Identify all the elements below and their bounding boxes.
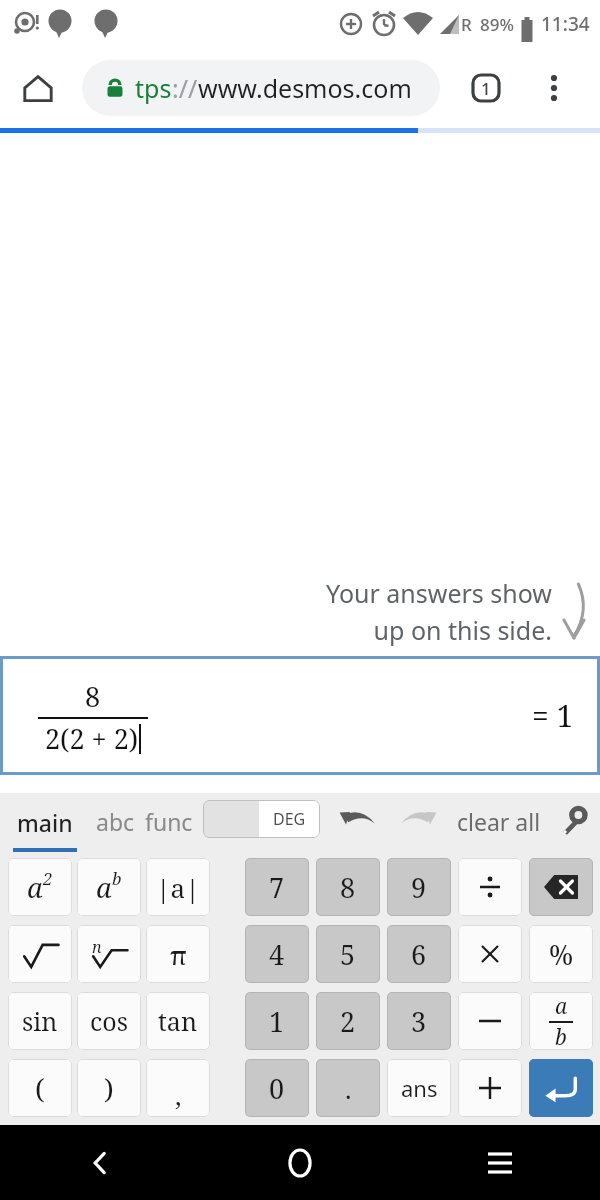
button[interactable]: Settings [550,793,596,849]
staticText: 8 [340,869,356,906]
staticText: 1 [481,77,491,100]
staticText: ans [401,1073,438,1103]
button[interactable]: func [136,793,202,849]
button[interactable]: Fraction [529,992,593,1050]
staticText: 0 [269,1070,285,1107]
button[interactable]: ans [387,1059,451,1117]
button[interactable]: clear all [448,793,550,849]
button[interactable]: , [146,1059,210,1117]
staticText: 2 [43,867,53,890]
staticText: a [96,869,112,906]
staticText: 8 [85,678,101,715]
button[interactable]: 1 [245,992,309,1050]
button[interactable]: 7 [245,858,309,916]
button[interactable]: a [77,858,141,916]
staticText: abc [96,806,135,837]
staticText: Your answers show [325,576,552,610]
button[interactable]: 5 [316,925,380,983]
button[interactable]: 6 [387,925,451,983]
staticText: sin [22,1004,58,1038]
staticText: 7 [269,869,285,906]
button[interactable]: tan [146,992,210,1050]
button[interactable]: Tabs [460,62,512,114]
staticText: 5 [340,936,356,973]
staticText: 1 [269,1003,285,1040]
staticText: b [112,867,122,890]
button[interactable]: Multiply [458,925,522,983]
button[interactable]: Decimal point [316,1059,380,1117]
staticText: 4 [269,936,285,973]
button[interactable]: ) [77,1059,141,1117]
staticText: ( [35,1069,45,1107]
staticText: tan [158,1004,198,1038]
staticText: :// [172,71,198,105]
button[interactable]: |a| [146,858,210,916]
button[interactable]: DEG [203,800,320,838]
button[interactable]: main [10,793,80,852]
button[interactable]: % [529,925,593,983]
staticText: clear all [457,806,541,837]
button[interactable]: Enter [529,1059,593,1117]
staticText: 11:34 [541,11,590,37]
button[interactable]: 2 [316,992,380,1050]
staticText: up on this side. [373,613,552,647]
button[interactable]: Plus [458,1059,522,1117]
button[interactable]: abc [84,793,146,849]
staticText: 3 [411,1003,427,1040]
staticText: tps [135,71,172,105]
button[interactable]: 8 [316,858,380,916]
button[interactable]: Minus [458,992,522,1050]
staticText: π [170,937,187,972]
button[interactable]: 0 [245,1059,309,1117]
staticText: 89% [480,13,514,36]
button[interactable]: Home [14,64,62,112]
button[interactable]: Square root [8,925,72,983]
staticText: 2 [340,1003,356,1040]
staticText: % [549,936,574,973]
staticText: ) [104,1069,114,1107]
button[interactable]: Backspace [529,858,593,916]
staticText: 9 [411,869,427,906]
staticText: |a| [156,870,200,905]
staticText: cos [90,1004,129,1038]
staticText: , [175,1077,182,1112]
staticText: R [461,13,472,36]
button[interactable]: 8 [0,656,600,775]
staticText: 6 [411,936,427,973]
button[interactable]: Recent apps [400,1125,600,1200]
button[interactable]: 9 [387,858,451,916]
staticText: n [92,936,102,958]
button[interactable]: 3 [387,992,451,1050]
button[interactable]: Divide [458,858,522,916]
button[interactable]: Redo [392,793,444,849]
staticText: = 1 [532,695,574,736]
button[interactable]: 4 [245,925,309,983]
staticText: 2(2 + 2) [45,720,139,757]
button[interactable]: ( [8,1059,72,1117]
button[interactable]: Back [0,1125,200,1200]
staticText: www.desmos.com [198,71,412,105]
staticText: DEG [273,808,306,830]
staticText: . [345,1071,352,1106]
staticText: a [27,869,43,906]
button[interactable]: π [146,925,210,983]
button[interactable]: a [8,858,72,916]
button[interactable]: Nth root [77,925,141,983]
staticText: func [145,806,193,837]
button[interactable]: tps [82,60,440,116]
button[interactable]: Home [200,1125,400,1200]
staticText: main [17,807,73,838]
staticText: b [555,1023,567,1050]
staticText: a [555,992,568,1021]
button[interactable]: cos [77,992,141,1050]
button[interactable]: sin [8,992,72,1050]
button[interactable]: More options [528,62,580,114]
button[interactable]: Undo [332,793,384,849]
